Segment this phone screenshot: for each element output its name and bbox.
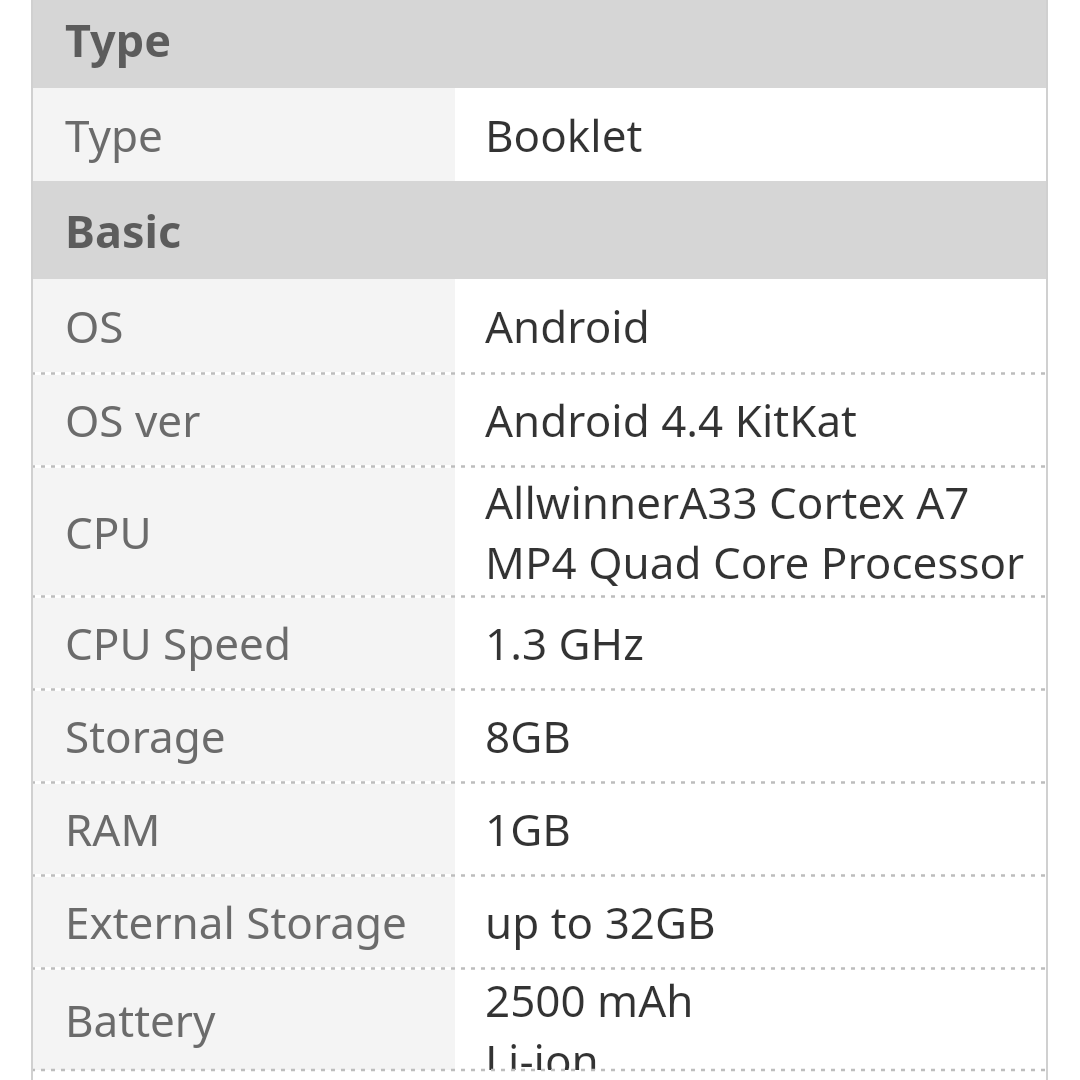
staticText: Type: [65, 9, 172, 70]
button[interactable]: Type: [31, 0, 1048, 88]
staticText: Android: [485, 296, 650, 356]
staticText: AllwinnerA33 Cortex A7: [485, 472, 970, 532]
staticText: 2500 mAh: [485, 970, 694, 1030]
staticText: CPU Speed: [65, 613, 291, 673]
button[interactable]: Battery: [31, 970, 1048, 1070]
staticText: RAM: [65, 799, 161, 859]
button[interactable]: External Storage: [31, 877, 1048, 967]
button[interactable]: OS ver: [31, 375, 1048, 465]
staticText: Battery: [65, 990, 216, 1050]
staticText: 8GB: [485, 706, 571, 766]
staticText: MP4 Quad Core Processor: [485, 532, 1025, 592]
staticText: Storage: [65, 706, 226, 766]
staticText: Booklet: [485, 105, 643, 165]
button[interactable]: CPU Speed: [31, 598, 1048, 688]
button[interactable]: RAM: [31, 784, 1048, 874]
button[interactable]: OS: [31, 279, 1048, 372]
staticText: External Storage: [65, 892, 407, 952]
staticText: up to 32GB: [485, 892, 716, 952]
staticText: 1GB: [485, 799, 571, 859]
button[interactable]: Type: [31, 88, 1048, 181]
staticText: Android 4.4 KitKat: [485, 390, 857, 450]
staticText: CPU: [65, 502, 152, 562]
button[interactable]: Basic: [31, 181, 1048, 279]
staticText: Li-ion: [485, 1030, 599, 1070]
button[interactable]: Storage: [31, 691, 1048, 781]
staticText: Basic: [65, 200, 182, 261]
staticText: OS ver: [65, 390, 201, 450]
button[interactable]: CPU: [31, 468, 1048, 595]
staticText: Type: [65, 105, 163, 165]
staticText: 1.3 GHz: [485, 613, 644, 673]
staticText: OS: [65, 296, 124, 356]
